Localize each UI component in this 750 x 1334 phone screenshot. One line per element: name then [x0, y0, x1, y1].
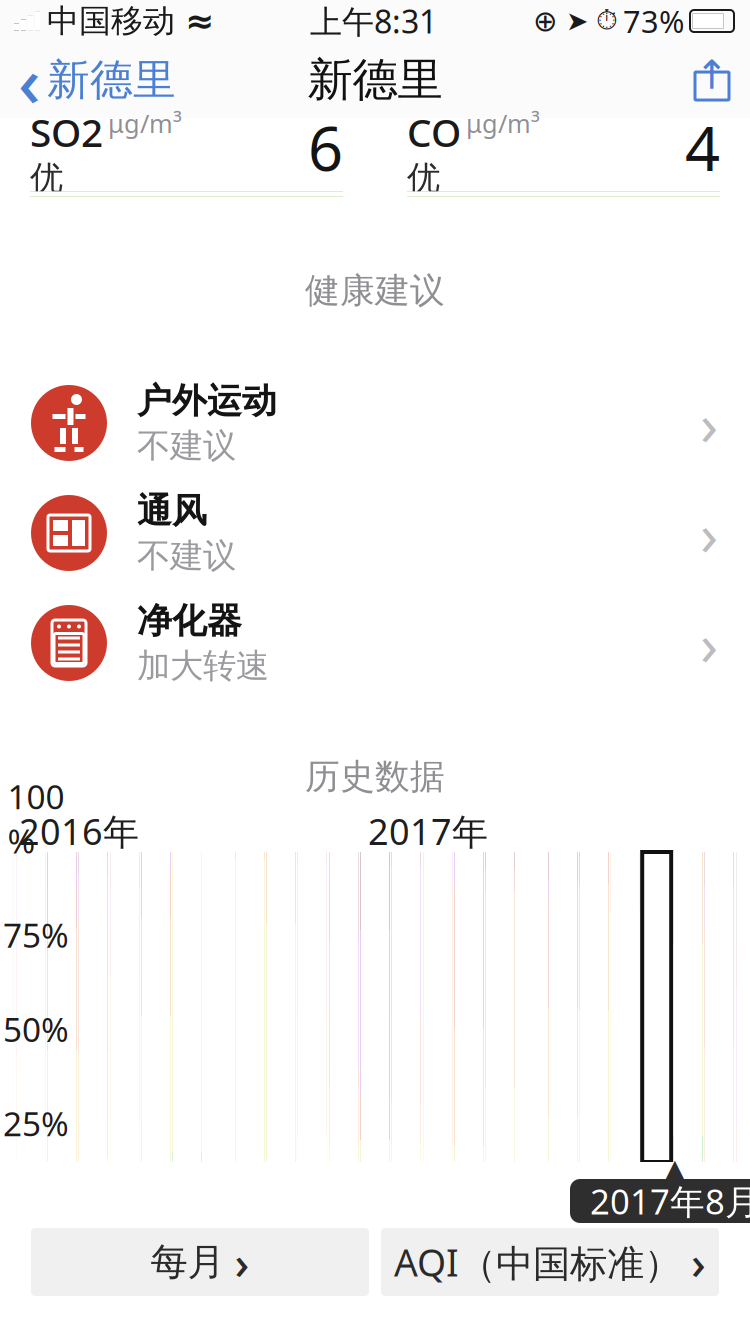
staticText: 2016年 [19, 807, 139, 855]
staticText: 健康建议 [305, 269, 445, 312]
staticText: 新德里 [307, 52, 442, 108]
staticText: μg/m³ [466, 106, 540, 140]
staticText: ≈ [185, 1, 214, 41]
staticText: AQI（中国标准） [394, 1237, 681, 1287]
staticText: 优 [30, 158, 63, 199]
staticText: 2017年8月 [590, 1178, 750, 1224]
staticText: 75% [3, 913, 69, 957]
staticText: 25% [3, 1101, 69, 1146]
staticText: 户外运动 [137, 380, 277, 422]
staticText: › [691, 1232, 706, 1292]
button[interactable]: AQI（中国标准） [381, 1228, 719, 1296]
staticText: › [700, 604, 718, 682]
staticText: 净化器 [137, 600, 242, 642]
staticText: 6 [308, 106, 343, 188]
button[interactable]: 每月 [31, 1228, 369, 1296]
staticText: › [700, 494, 718, 572]
staticText: 0 [26, 1195, 45, 1240]
staticText: 中国移动 [47, 1, 175, 41]
staticText: 73% [623, 1, 684, 41]
staticText: 历史数据 [305, 755, 445, 798]
button[interactable]: 净化器 [0, 588, 750, 698]
staticText: ⊕ [533, 4, 558, 38]
staticText: ‹ [18, 34, 41, 126]
staticText: › [700, 384, 718, 462]
staticText: 通风 [137, 490, 207, 532]
staticText: 加大转速 [137, 645, 269, 686]
staticText: ➤ [566, 6, 588, 36]
staticText: 2017年 [368, 807, 488, 855]
staticText: CO [407, 106, 461, 158]
staticText: 不建议 [137, 425, 236, 466]
staticText: μg/m³ [108, 106, 182, 140]
button[interactable]: 通风 [0, 478, 750, 588]
button[interactable]: ‹ [0, 42, 194, 118]
staticText: 新德里 [47, 54, 176, 106]
staticText: 不建议 [137, 535, 236, 576]
staticText: ↑ [695, 52, 729, 98]
staticText: ⏱ [596, 7, 618, 35]
staticText: 4 [685, 106, 720, 188]
button[interactable]: 户外运动 [0, 368, 750, 478]
staticText: 每月 [150, 1239, 224, 1285]
staticText: ▲ [661, 1151, 688, 1191]
staticText: 100% [7, 774, 64, 863]
staticText: › [234, 1232, 249, 1292]
staticText: SO2 [30, 106, 103, 158]
staticText: 优 [407, 158, 440, 199]
button[interactable]: 分享 [674, 42, 750, 118]
staticText: 50% [3, 1007, 69, 1051]
staticText: 上午8:31 [310, 0, 437, 42]
